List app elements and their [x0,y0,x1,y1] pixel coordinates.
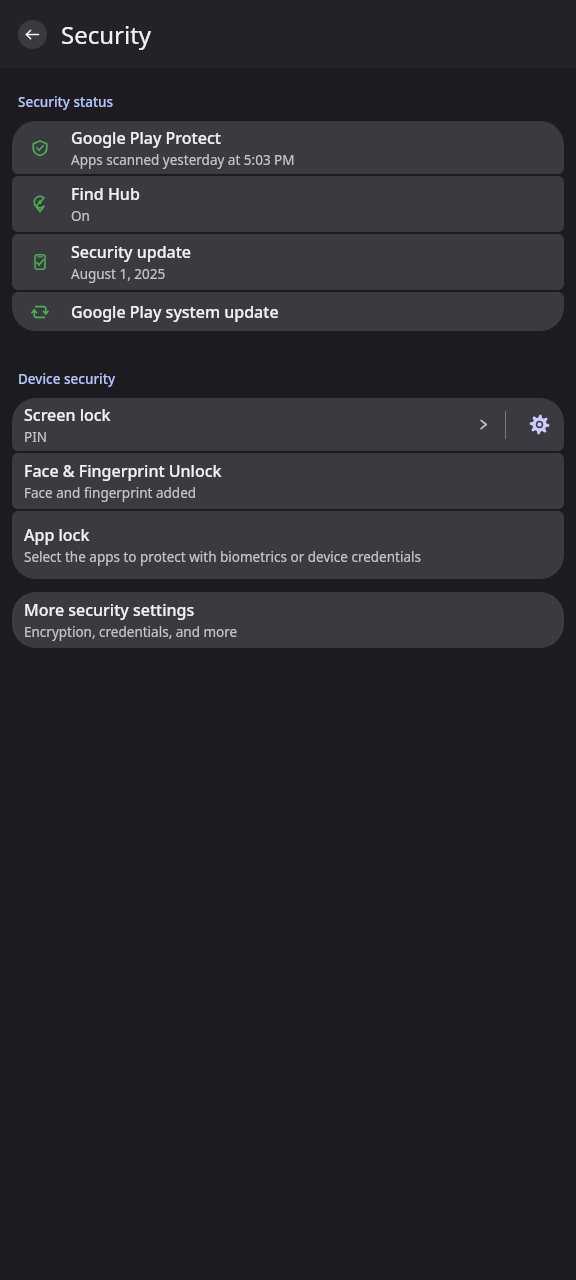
staticText: Face & Fingerprint Unlock [24,460,222,482]
staticText: Find Hub [71,183,140,205]
staticText: Apps scanned yesterday at 5:03 PM [71,151,295,169]
staticText: App lock [24,524,90,546]
staticText: More security settings [24,599,195,621]
staticText: Screen lock [24,404,111,426]
button[interactable]: Face & Fingerprint Unlock [12,453,564,509]
staticText: Security [61,18,152,51]
button[interactable]: Find Hub [12,176,564,232]
button[interactable]: Back [18,20,47,49]
staticText: Device security [18,370,116,388]
staticText: Security update [71,241,192,263]
button[interactable]: Google Play Protect [12,121,564,174]
staticText: Google Play Protect [71,127,221,149]
staticText: On [71,207,90,225]
button[interactable]: Screen lock [12,398,564,451]
staticText: PIN [24,428,48,446]
staticText: August 1, 2025 [71,265,166,283]
button[interactable]: Google Play system update [12,292,564,331]
button[interactable]: Screen lock settings [514,398,564,451]
staticText: Face and fingerprint added [24,484,197,502]
staticText: Select the apps to protect with biometri… [24,548,421,566]
staticText: Google Play system update [71,301,279,323]
staticText: Encryption, credentials, and more [24,623,238,641]
button[interactable]: More security settings [12,592,564,648]
button[interactable]: App lock [12,511,564,579]
button[interactable]: Security update [12,234,564,290]
staticText: Security status [18,93,114,111]
